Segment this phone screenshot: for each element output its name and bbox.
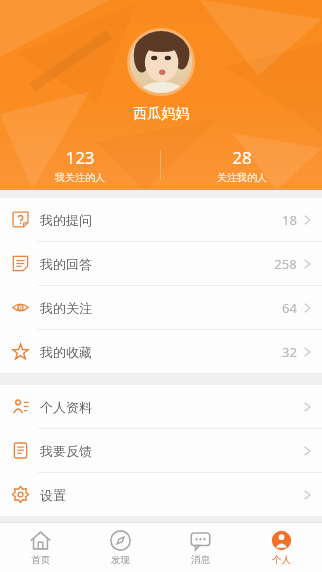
staticText: 西瓜妈妈 — [133, 105, 189, 123]
button[interactable]: Profile photo — [127, 28, 195, 96]
staticText: 64 — [282, 299, 297, 317]
staticText: 我的收藏 — [40, 344, 92, 360]
button[interactable]: 123 — [0, 141, 160, 189]
staticText: 我的回答 — [40, 256, 92, 272]
staticText: 18 — [282, 211, 297, 229]
staticText: 我的关注 — [40, 300, 92, 316]
staticText: 258 — [274, 255, 297, 273]
button[interactable]: 我的收藏 — [0, 330, 322, 373]
button[interactable]: 消息 — [160, 523, 241, 572]
staticText: 首页 — [31, 554, 50, 566]
staticText: 我关注的人 — [55, 171, 105, 184]
staticText: 28 — [232, 146, 252, 169]
staticText: 123 — [65, 146, 95, 169]
staticText: 设置 — [40, 487, 66, 503]
staticText: 发现 — [111, 554, 130, 566]
button[interactable]: 设置 — [0, 473, 322, 516]
button[interactable]: 发现 — [80, 523, 160, 572]
staticText: 个人资料 — [40, 399, 92, 415]
button[interactable]: 首页 — [0, 523, 80, 572]
button[interactable]: 个人资料 — [0, 385, 322, 428]
staticText: 消息 — [191, 554, 210, 566]
staticText: 我的提问 — [40, 212, 92, 228]
button[interactable]: 28 — [161, 141, 322, 189]
staticText: 个人 — [272, 554, 291, 566]
button[interactable]: 我的回答 — [0, 242, 322, 285]
button[interactable]: 个人 — [241, 523, 322, 572]
staticText: 我要反馈 — [40, 443, 92, 459]
button[interactable]: 我要反馈 — [0, 429, 322, 472]
staticText: 32 — [282, 343, 297, 361]
staticText: 关注我的人 — [217, 171, 267, 184]
button[interactable]: 我的关注 — [0, 286, 322, 329]
button[interactable]: 我的提问 — [0, 198, 322, 241]
